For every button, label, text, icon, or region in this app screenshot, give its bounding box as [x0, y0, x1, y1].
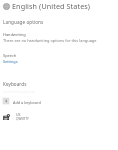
staticText: English (United States): [12, 1, 91, 11]
staticText: Add a keyboard: [13, 100, 41, 105]
staticText: Settings: [3, 59, 18, 64]
staticText: Handwriting: [3, 32, 26, 37]
button[interactable]: US: [0, 111, 118, 124]
staticText: There are no handwriting options for thi…: [3, 38, 97, 43]
staticText: Keyboards: [3, 81, 27, 87]
button[interactable]: Language: [3, 3, 10, 10]
button[interactable]: Add a keyboard: [0, 96, 118, 107]
staticText: QWERTY: [16, 117, 29, 121]
staticText: US: [16, 112, 21, 117]
button[interactable]: Settings: [2, 58, 18, 64]
staticText: Language options: [3, 19, 44, 25]
staticText: Speech: [3, 53, 17, 58]
